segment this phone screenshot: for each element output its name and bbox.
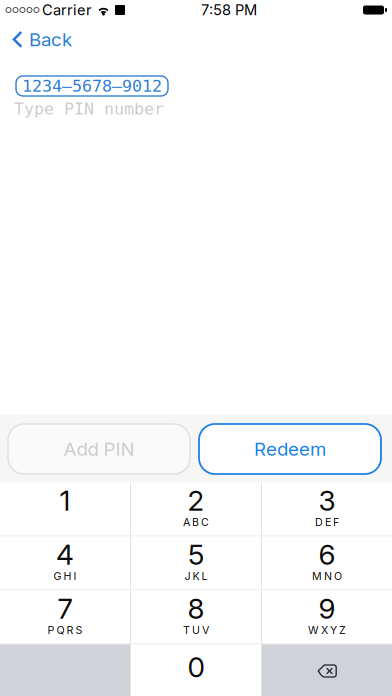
staticText: Back [29, 28, 72, 51]
staticText: 8 [187, 592, 204, 625]
staticText: J K L [184, 569, 207, 582]
staticText: Add PIN [63, 438, 134, 460]
staticText: 3 [318, 484, 335, 517]
button[interactable]: Add PIN [8, 424, 190, 474]
button[interactable]: 9 [262, 590, 392, 643]
staticText: W X Y Z [308, 623, 346, 636]
staticText: T U V [183, 623, 209, 636]
staticText: 9 [318, 592, 335, 625]
staticText: 0 [187, 650, 204, 684]
button[interactable]: Redeem [199, 424, 381, 474]
button[interactable]: 2 [131, 482, 261, 535]
staticText: G H I [53, 569, 76, 582]
button[interactable]: 8 [131, 590, 261, 643]
staticText: M N O [312, 569, 342, 582]
button[interactable]: 1234–5678–9012 [16, 76, 168, 96]
staticText: D E F [315, 515, 339, 528]
button[interactable]: 7 [0, 590, 130, 643]
staticText: Carrier [42, 1, 92, 19]
staticText: 5 [188, 538, 204, 571]
staticText: 4 [56, 538, 74, 571]
staticText: P Q R S [47, 623, 82, 636]
button[interactable]: 3 [262, 482, 392, 535]
staticText: 1234–5678–9012 [22, 76, 162, 96]
staticText: 2 [187, 484, 204, 517]
staticText: 1 [59, 484, 70, 517]
staticText: A B C [183, 515, 209, 528]
staticText: 6 [318, 538, 335, 571]
button[interactable]: Back [0, 20, 82, 54]
staticText: 7:58 PM [201, 1, 257, 19]
button[interactable]: Delete [262, 644, 392, 696]
button[interactable]: 0 [131, 644, 261, 696]
staticText: 7 [57, 592, 72, 625]
button[interactable]: 1 [0, 482, 130, 535]
button[interactable]: 4 [0, 536, 130, 589]
staticText: Type PIN number [14, 99, 164, 118]
button[interactable]: 5 [131, 536, 261, 589]
staticText: Redeem [254, 438, 326, 460]
button[interactable]: 6 [262, 536, 392, 589]
